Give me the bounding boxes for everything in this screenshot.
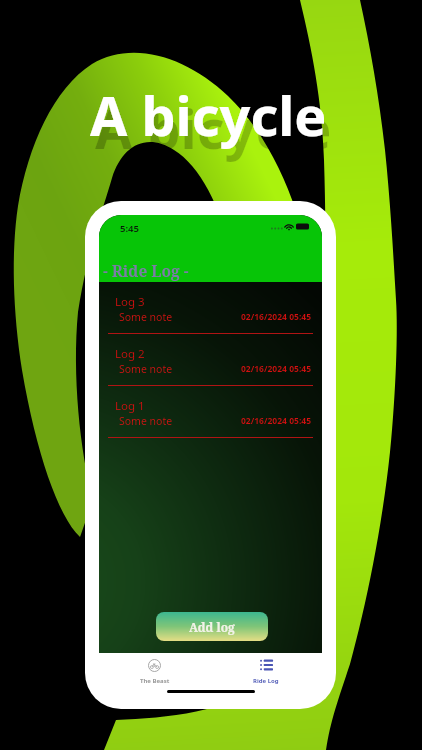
button[interactable]: Ride Log	[210, 659, 322, 685]
staticText: A bicycle	[90, 78, 327, 152]
staticText: Ride Log	[253, 677, 279, 685]
staticText: Add log	[189, 619, 235, 635]
staticText: Some note	[119, 310, 173, 324]
button[interactable]: Add log	[156, 612, 268, 641]
staticText: 02/16/2024 05:45	[241, 311, 311, 323]
staticText: Log 2	[115, 346, 145, 362]
staticText: Some note	[119, 362, 173, 376]
staticText: 02/16/2024 05:45	[241, 363, 311, 375]
staticText: The Beast	[140, 677, 170, 685]
staticText: Log 1	[115, 398, 145, 414]
staticText: 5:45	[120, 222, 139, 235]
other: Ride Log	[260, 659, 273, 672]
staticText: - Ride Log -	[103, 260, 189, 281]
button[interactable]: Log 3	[99, 282, 322, 334]
button[interactable]: Log 1	[99, 386, 322, 438]
button[interactable]: Log 2	[99, 334, 322, 386]
staticText: Some note	[119, 414, 173, 428]
staticText: A bicycle	[95, 91, 332, 165]
staticText: Log 3	[115, 294, 145, 310]
other: The Beast	[148, 659, 161, 672]
staticText: 02/16/2024 05:45	[241, 415, 311, 427]
button[interactable]: The Beast	[99, 659, 210, 685]
